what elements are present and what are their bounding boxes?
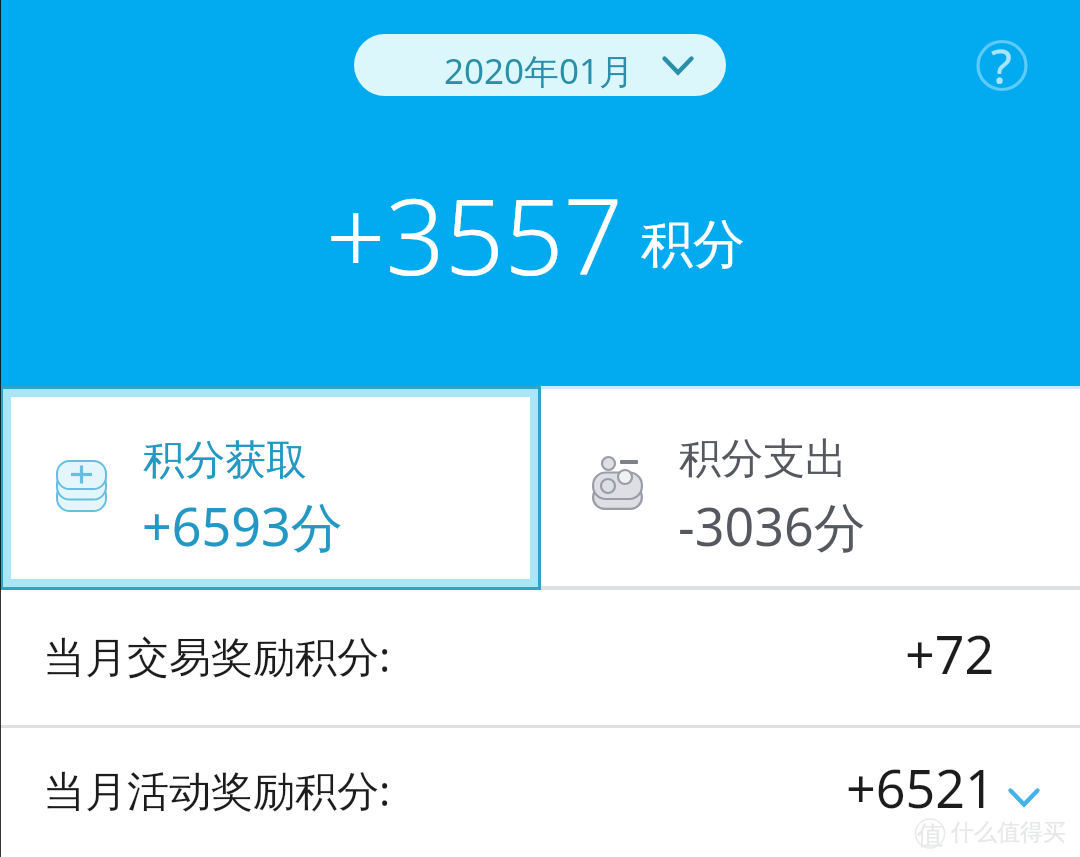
staticText: +72 <box>905 618 995 689</box>
button[interactable]: 积分获取 <box>0 386 541 590</box>
button[interactable]: Help <box>970 33 1034 97</box>
staticText: 积分支出 <box>679 433 847 486</box>
staticText: +3557 <box>326 164 623 306</box>
button[interactable]: 2020年01月 <box>354 34 726 96</box>
staticText: 当月交易奖励积分: <box>43 627 391 684</box>
staticText: 积分获取 <box>143 435 307 487</box>
button[interactable]: 当月交易奖励积分: <box>0 590 1080 726</box>
button[interactable]: 积分支出 <box>541 386 1080 590</box>
staticText: 2020年01月 <box>444 47 635 95</box>
staticText: +6521 <box>846 752 995 823</box>
staticText: ? <box>991 33 1012 97</box>
staticText: 什么值得买 <box>951 818 1066 847</box>
staticText: -3036分 <box>678 490 866 561</box>
staticText: +6593分 <box>142 490 343 561</box>
staticText: 积分 <box>641 212 745 278</box>
staticText: 当月活动奖励积分: <box>43 761 391 818</box>
staticText: 值 <box>917 819 943 852</box>
button[interactable]: 当月活动奖励积分: <box>0 728 1080 857</box>
